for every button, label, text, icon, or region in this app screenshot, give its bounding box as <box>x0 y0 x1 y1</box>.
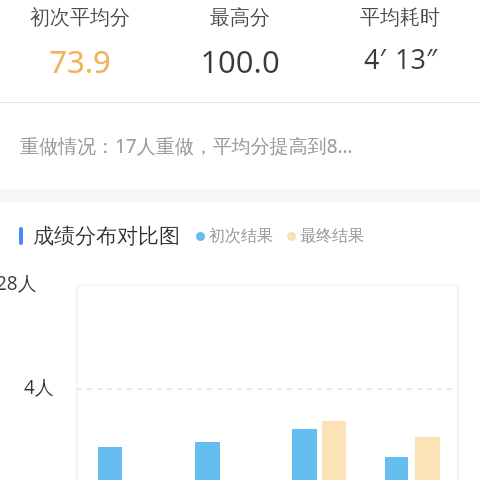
staticText: 成绩分布对比图 <box>33 223 180 249</box>
staticText: 73.9 <box>49 40 111 82</box>
button[interactable]: 重做情况：17人重做，平均分提高到8… <box>0 103 480 189</box>
staticText: 初次结果 <box>209 226 273 246</box>
staticText: 4′ <box>364 40 386 77</box>
staticText: 平均耗时 <box>360 5 440 30</box>
staticText: 28人 <box>0 270 37 296</box>
staticText: 初次平均分 <box>30 5 130 30</box>
staticText: 100.0 <box>200 40 280 82</box>
button[interactable]: 初次结果 <box>196 226 273 246</box>
button[interactable]: 最高分 <box>160 0 320 82</box>
staticText: 4人 <box>24 374 54 400</box>
staticText: 13″ <box>395 40 437 77</box>
button[interactable]: 平均耗时 <box>320 0 480 77</box>
staticText: 重做情况：17人重做，平均分提高到8… <box>20 133 353 159</box>
button[interactable]: 初次平均分 <box>0 0 160 82</box>
staticText: 最终结果 <box>300 226 364 246</box>
button[interactable]: 最终结果 <box>287 226 364 246</box>
staticText: 最高分 <box>210 5 270 30</box>
